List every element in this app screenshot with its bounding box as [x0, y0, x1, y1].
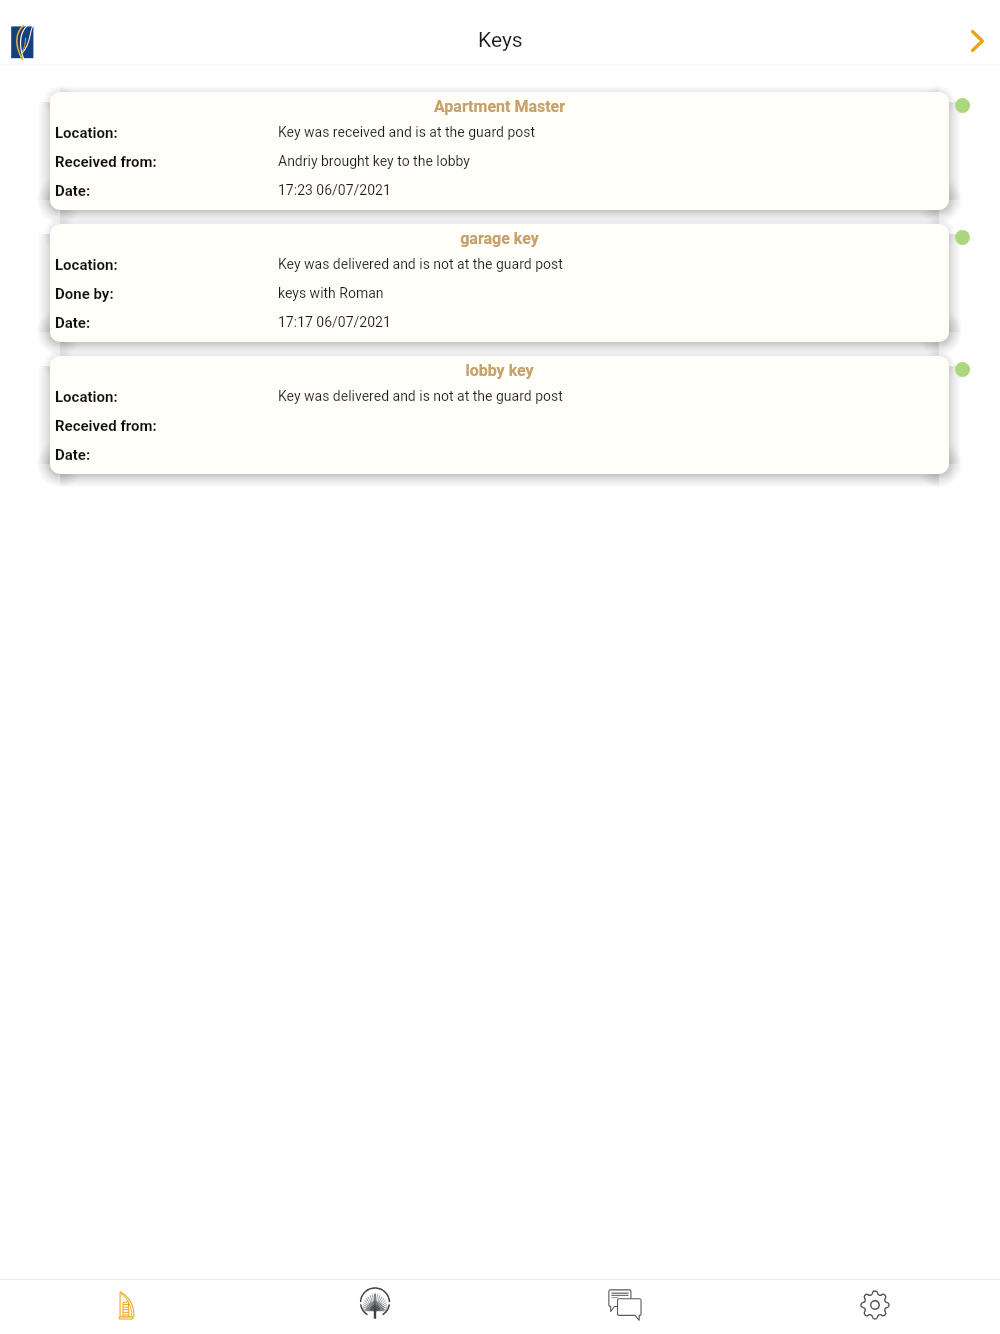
staticText: Andriy brought key to the lobby — [278, 153, 470, 169]
staticText: Location: — [55, 388, 118, 406]
button[interactable]: Apartment Master — [50, 92, 949, 210]
staticText: lobby key — [50, 361, 949, 380]
staticText: Done by: — [55, 285, 114, 303]
staticText: Keys — [478, 28, 523, 53]
staticText: Location: — [55, 124, 118, 142]
button[interactable]: garage key — [50, 224, 949, 342]
staticText: Key was delivered and is not at the guar… — [278, 388, 563, 404]
button[interactable]: App logo — [5, 16, 45, 66]
button[interactable]: Next — [954, 19, 998, 63]
staticText: Received from: — [55, 417, 157, 435]
staticText: Date: — [55, 182, 91, 200]
button[interactable]: lobby key — [50, 356, 949, 474]
button[interactable]: Community — [250, 1279, 500, 1334]
staticText: Key was received and is at the guard pos… — [278, 124, 536, 140]
staticText: Apartment Master — [50, 97, 949, 116]
staticText: 17:17 06/07/2021 — [278, 314, 391, 330]
staticText: Location: — [55, 256, 118, 274]
staticText: Date: — [55, 446, 91, 464]
button[interactable]: Chat — [500, 1279, 750, 1334]
staticText: Key was delivered and is not at the guar… — [278, 256, 563, 272]
staticText: Received from: — [55, 153, 157, 171]
staticText: garage key — [50, 229, 949, 248]
staticText: keys with Roman — [278, 285, 384, 301]
button[interactable]: Settings — [750, 1279, 1000, 1334]
staticText: Date: — [55, 314, 91, 332]
button[interactable]: Buildings — [0, 1279, 250, 1334]
staticText: 17:23 06/07/2021 — [278, 182, 391, 198]
